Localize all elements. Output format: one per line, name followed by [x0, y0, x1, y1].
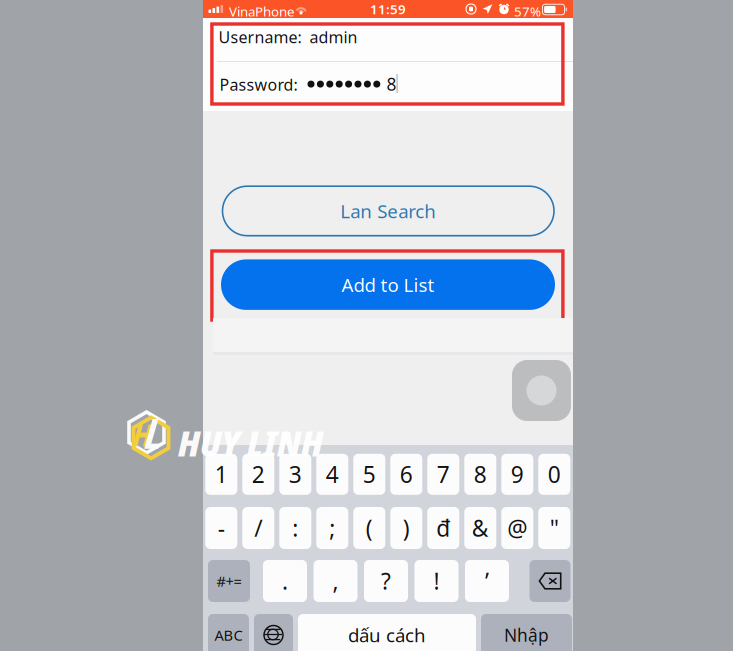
staticText: : [292, 513, 298, 543]
staticText: VinaPhone [229, 2, 295, 20]
staticText: Add to List [341, 272, 434, 297]
button[interactable]: 8 [464, 454, 496, 495]
button[interactable]: #+= [208, 560, 250, 602]
button[interactable]: 0 [538, 454, 570, 495]
staticText: ) [403, 513, 410, 543]
staticText: 3 [289, 459, 302, 489]
button[interactable]: Key [254, 614, 293, 651]
staticText: ! [433, 566, 439, 596]
staticText: đ [436, 513, 450, 543]
button[interactable]: ? [364, 560, 408, 602]
staticText: / [254, 513, 262, 543]
button[interactable]: đ [427, 507, 459, 549]
staticText: Lan Search [340, 199, 436, 223]
staticText: ’ [485, 566, 489, 596]
staticText: 8 [386, 72, 396, 95]
button[interactable]: 5 [353, 454, 385, 495]
button[interactable]: - [205, 507, 237, 549]
button[interactable]: dấu cách [298, 614, 476, 651]
staticText: 4 [326, 459, 339, 489]
staticText: 2 [252, 459, 265, 489]
button[interactable]: AssistiveTouch [512, 360, 571, 421]
staticText: 57% [514, 2, 541, 20]
staticText: - [218, 513, 225, 543]
staticText: ; [329, 513, 335, 543]
button[interactable]: @ [501, 507, 533, 549]
staticText: dấu cách [348, 623, 426, 647]
staticText: ? [381, 566, 391, 596]
staticText: #+= [216, 571, 241, 591]
staticText: @ [507, 513, 527, 543]
button[interactable]: ; [316, 507, 348, 549]
button[interactable]: 9 [501, 454, 533, 495]
staticText: 1 [215, 459, 228, 489]
button[interactable]: Key [529, 560, 570, 602]
staticText: 7 [437, 459, 450, 489]
staticText: " [550, 513, 559, 543]
staticText: . [282, 566, 288, 596]
staticText: 8 [474, 459, 487, 489]
button[interactable]: ( [353, 507, 385, 549]
staticText: 5 [363, 459, 376, 489]
button[interactable]: 1 [205, 454, 237, 495]
staticText: 11:59 [370, 0, 406, 18]
button[interactable]: Nhập [481, 614, 572, 651]
button[interactable]: ) [390, 507, 422, 549]
staticText: 0 [548, 459, 561, 489]
button[interactable]: 6 [390, 454, 422, 495]
staticText: 9 [511, 459, 524, 489]
button[interactable]: 7 [427, 454, 459, 495]
button[interactable]: 2 [242, 454, 274, 495]
button[interactable]: ’ [465, 560, 509, 602]
staticText: 6 [400, 459, 413, 489]
button[interactable]: 4 [316, 454, 348, 495]
staticText: HUY LINH [178, 418, 323, 467]
button[interactable]: / [242, 507, 274, 549]
button[interactable]: : [279, 507, 311, 549]
staticText: , [332, 566, 338, 596]
staticText: Password: [219, 74, 297, 95]
button[interactable]: , [313, 560, 357, 602]
button[interactable]: . [263, 560, 307, 602]
staticText: & [472, 513, 489, 543]
staticText: ABC [214, 625, 242, 645]
button[interactable]: Lan Search [222, 186, 554, 236]
button[interactable]: & [464, 507, 496, 549]
staticText: Nhập [504, 623, 549, 646]
button[interactable]: 3 [279, 454, 311, 495]
staticText: ( [366, 513, 373, 543]
button[interactable]: Add to List [221, 259, 555, 310]
staticText: Username: admin [218, 26, 357, 48]
button[interactable]: " [538, 507, 570, 549]
button[interactable]: ! [414, 560, 458, 602]
button[interactable]: ABC [208, 614, 249, 651]
